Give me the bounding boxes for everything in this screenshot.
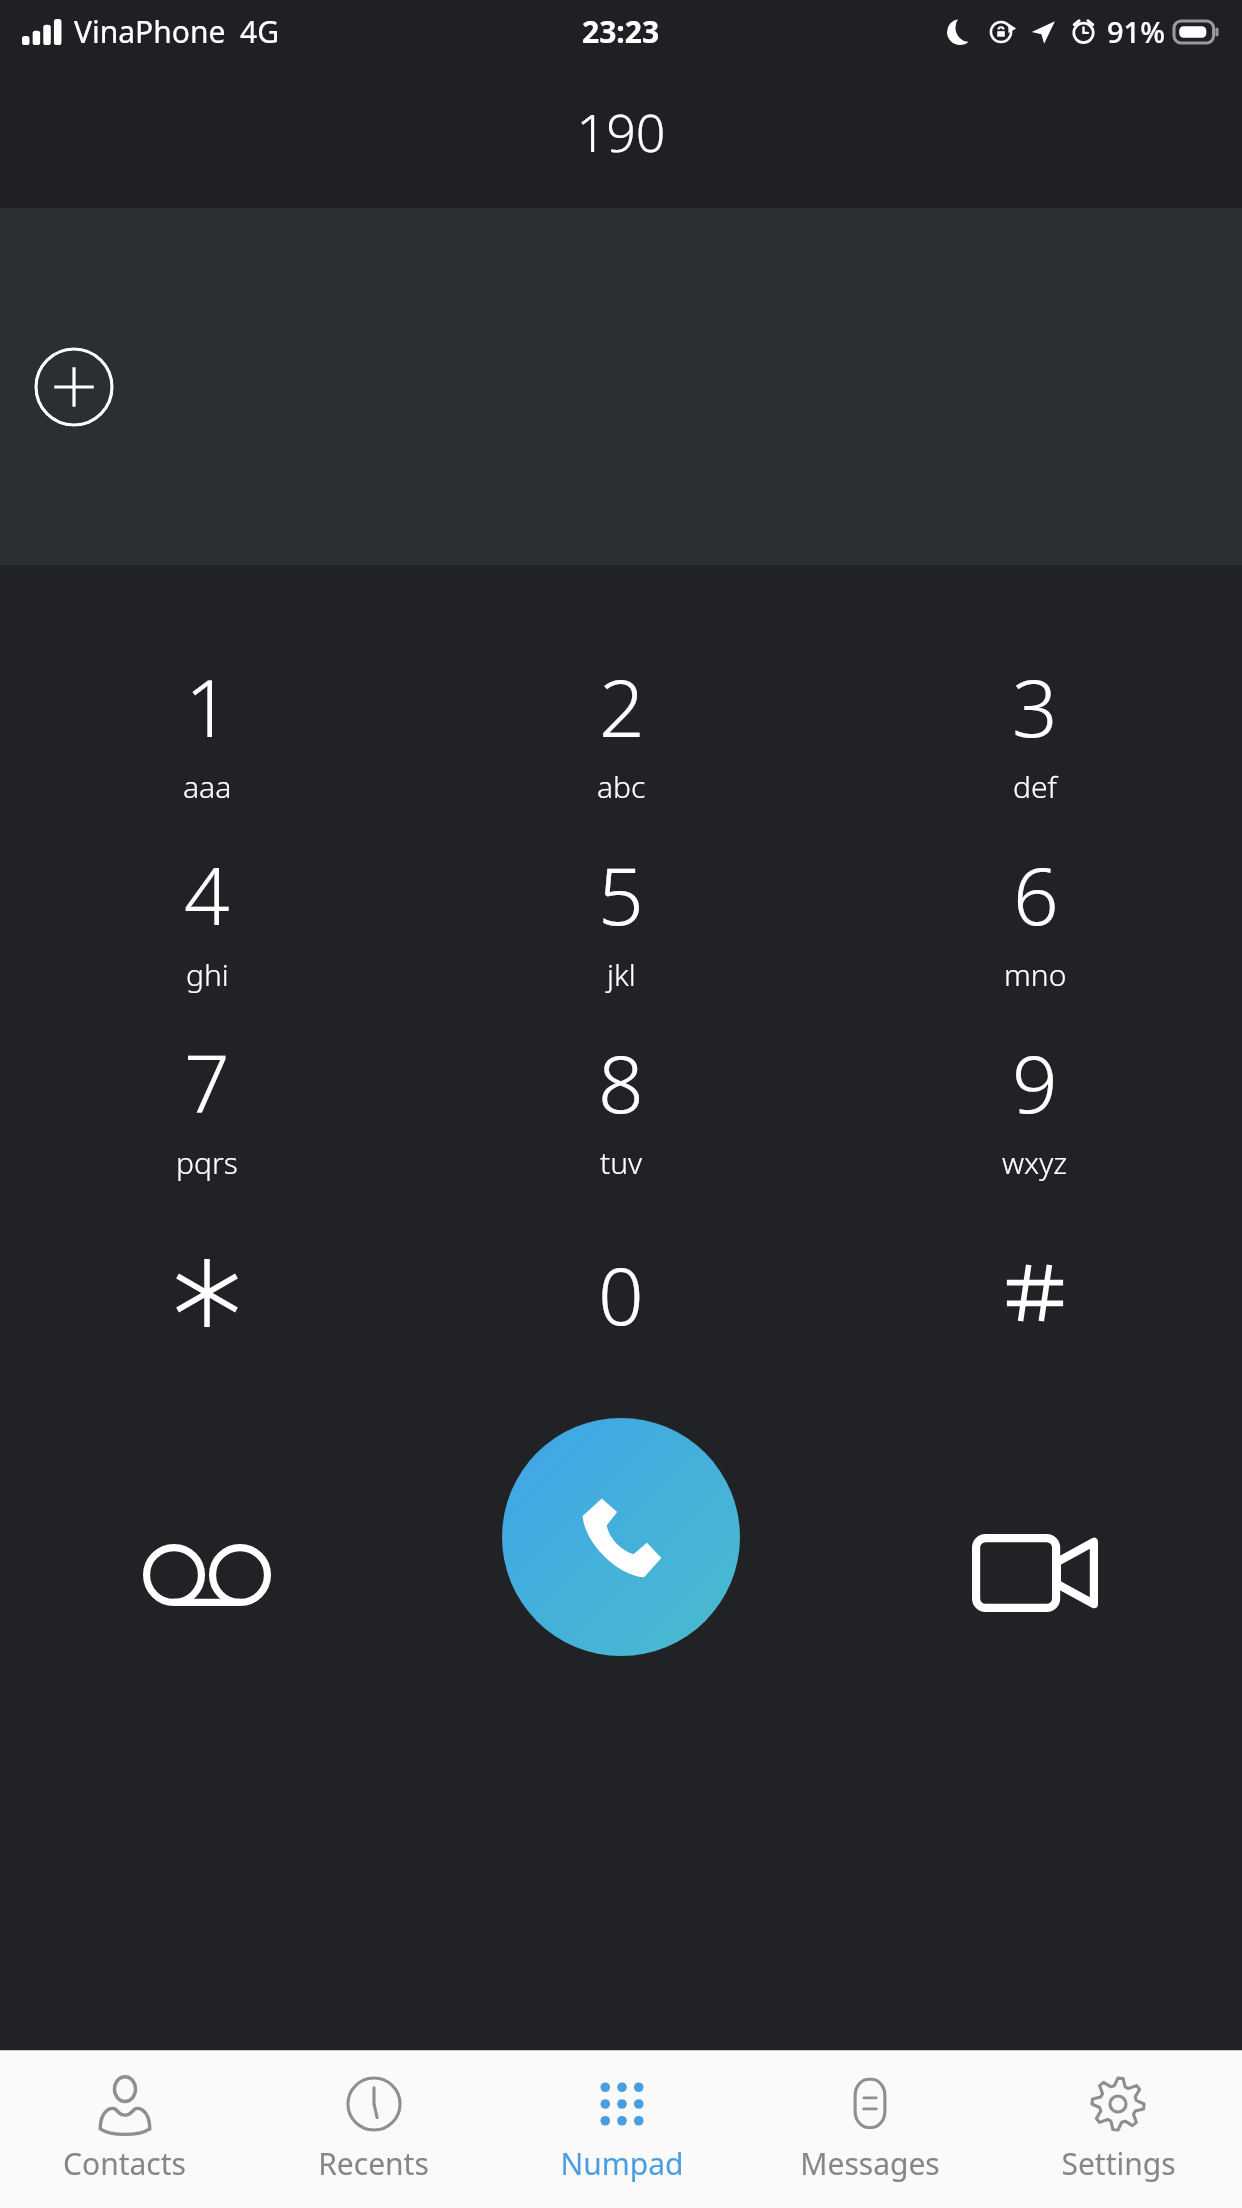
staticText: Recents [318,2143,429,2184]
staticText: jkl [607,954,636,995]
staticText: pqrs [176,1142,238,1183]
button[interactable]: Messages [746,2051,994,2208]
staticText: wxyz [1002,1142,1068,1183]
staticText: Contacts [63,2143,186,2184]
button[interactable]: 5 [414,823,828,1011]
staticText: ghi [186,954,229,995]
staticText: 3 [1012,651,1058,760]
staticText: mno [1004,954,1067,995]
button[interactable]: 7 [0,1011,414,1199]
staticText: 4 [184,839,230,948]
staticText: 0 [598,1239,644,1348]
button[interactable]: Recents [249,2051,498,2208]
button[interactable]: Numpad [498,2051,746,2208]
button[interactable]: 9 [828,1011,1242,1199]
button[interactable]: Settings [994,2051,1242,2208]
staticText: 5 [598,839,644,948]
button[interactable]: 3 [828,635,1242,823]
staticText: Numpad [560,2143,684,2184]
staticText: Settings [1061,2143,1176,2184]
button[interactable]: Contacts [0,2051,249,2208]
staticText: aaa [183,766,232,807]
staticText: def [1013,766,1057,807]
button[interactable]: Video call [828,1417,1242,1657]
staticText: tuv [600,1142,643,1183]
button[interactable]: Call [502,1418,740,1656]
staticText: abc [597,766,646,807]
staticText: 91% [1107,12,1165,51]
button[interactable]: Voicemail [0,1417,414,1657]
staticText: 8 [598,1027,644,1136]
button[interactable]: 6 [828,823,1242,1011]
button[interactable]: Add contact [34,347,114,427]
staticText: 4G [240,11,279,52]
staticText: 2 [599,651,645,760]
staticText: 190 [576,96,666,167]
staticText: 9 [1012,1027,1058,1136]
button[interactable]: 4 [0,823,414,1011]
button[interactable] [828,1199,1242,1387]
button[interactable]: 1 [0,635,414,823]
staticText: 6 [1013,839,1059,948]
staticText: Messages [800,2143,940,2184]
staticText: 7 [184,1027,230,1136]
button[interactable]: 0 [414,1199,828,1387]
staticText: 23:23 [582,11,660,52]
button[interactable] [0,1199,414,1387]
button[interactable]: 2 [414,635,828,823]
staticText: 1 [185,651,231,760]
button[interactable]: 8 [414,1011,828,1199]
staticText: VinaPhone [74,11,226,52]
